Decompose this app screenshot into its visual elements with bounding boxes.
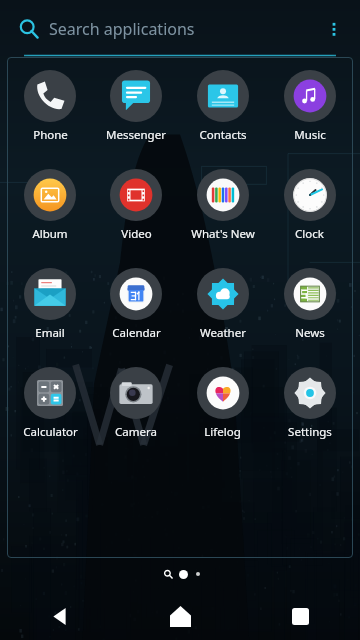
button[interactable]: Clock (266, 169, 353, 242)
staticText: Search applications (49, 18, 316, 40)
button[interactable]: Search page (160, 566, 176, 582)
button[interactable]: More options (316, 11, 352, 47)
button[interactable] (179, 570, 188, 579)
button[interactable]: Camera (93, 367, 179, 440)
staticText: Camera (115, 424, 157, 440)
staticText: Album (32, 226, 68, 242)
button[interactable]: Back (0, 592, 120, 640)
staticText: Calendar (112, 325, 161, 341)
button[interactable]: Video (93, 169, 179, 242)
staticText: Contacts (199, 127, 247, 143)
staticText: Weather (200, 325, 246, 341)
staticText: News (295, 325, 325, 341)
button[interactable]: Calculator (7, 367, 93, 440)
button[interactable]: Album (7, 169, 93, 242)
button[interactable]: News (266, 268, 353, 341)
button[interactable]: Weather (179, 268, 266, 341)
button[interactable]: What's New (179, 169, 266, 242)
button[interactable]: Search (12, 12, 46, 46)
staticText: Phone (33, 127, 68, 143)
button[interactable]: Contacts (179, 70, 266, 143)
button[interactable]: Calendar (93, 268, 179, 341)
staticText: Messenger (106, 127, 166, 143)
button[interactable]: Home (120, 592, 240, 640)
staticText: What's New (191, 226, 255, 242)
staticText: Clock (295, 226, 324, 242)
staticText: Email (35, 325, 65, 341)
button[interactable]: Email (7, 268, 93, 341)
staticText: Calculator (23, 424, 78, 440)
button[interactable] (196, 572, 200, 576)
button[interactable]: Settings (266, 367, 353, 440)
button[interactable]: Music (266, 70, 353, 143)
staticText: Lifelog (204, 424, 241, 440)
button[interactable]: Recent apps (240, 592, 360, 640)
staticText: Video (121, 226, 152, 242)
button[interactable]: Messenger (93, 70, 179, 143)
button[interactable]: Lifelog (179, 367, 266, 440)
staticText: Music (294, 127, 326, 143)
staticText: Settings (288, 424, 332, 440)
button[interactable]: Phone (7, 70, 93, 143)
